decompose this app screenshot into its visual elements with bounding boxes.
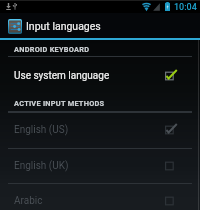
staticText: Input languages: [26, 20, 101, 32]
button[interactable]: Use system language: [0, 58, 200, 94]
staticText: English (UK): [14, 160, 69, 172]
other: Input languages settings: [8, 19, 22, 34]
button[interactable]: English (UK): [0, 148, 200, 183]
button[interactable]: English (US): [0, 112, 200, 148]
button[interactable]: Input languages settings: [0, 13, 200, 38]
other: Mobile signal: [153, 3, 160, 11]
staticText: Use system language: [14, 70, 110, 82]
staticText: Arabic: [14, 195, 43, 207]
button[interactable]: Arabic: [0, 183, 200, 210]
other: Downloading: [6, 3, 11, 10]
staticText: ACTIVE INPUT METHODS: [14, 99, 105, 108]
staticText: 10:04: [174, 2, 197, 13]
other: Battery charging: [165, 2, 170, 11]
other: USB connected: [13, 3, 17, 10]
staticText: ANDROID KEYBOARD: [14, 45, 90, 54]
other: Wi-Fi: [142, 3, 151, 11]
staticText: English (US): [14, 124, 69, 136]
